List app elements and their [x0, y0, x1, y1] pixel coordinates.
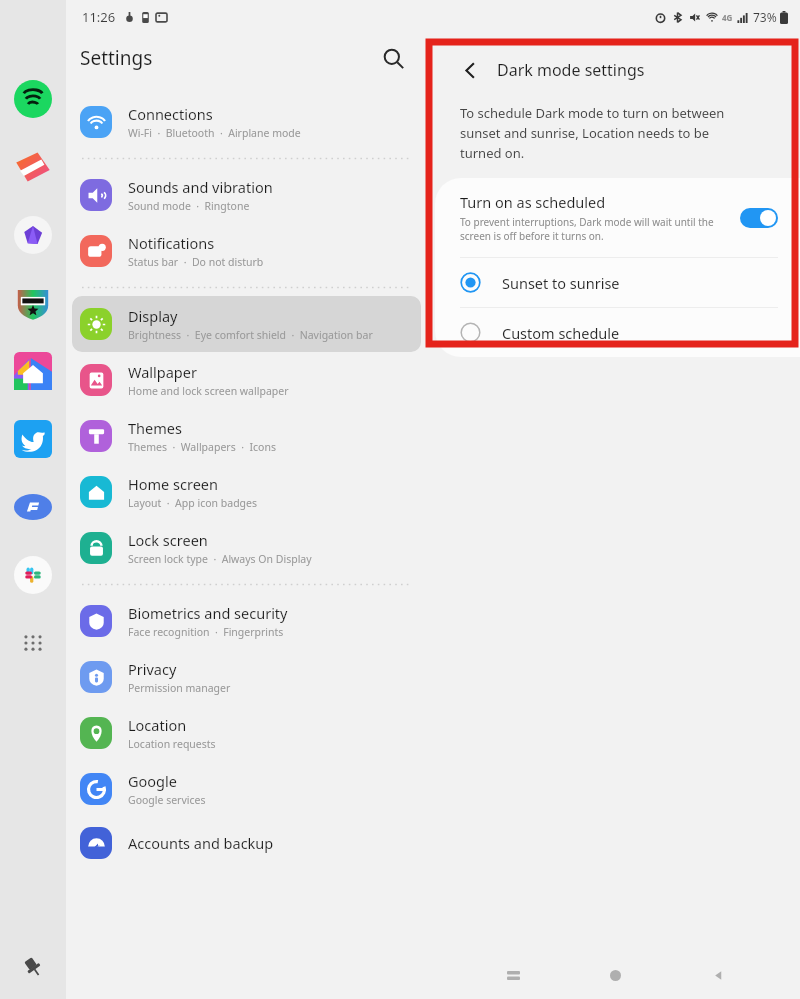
staticText: Sounds and vibration [128, 177, 273, 197]
staticText: Notifications [128, 233, 215, 253]
staticText: To prevent interruptions, Dark mode will… [460, 215, 726, 243]
button[interactable]: R app [12, 486, 54, 528]
staticText: Lock screen [128, 530, 208, 550]
staticText: Turn on as scheduled [460, 192, 606, 212]
staticText: Status bar · Do not disturb [128, 255, 264, 269]
staticText: Settings [80, 45, 153, 71]
button[interactable]: Notes [12, 146, 54, 188]
staticText: Home and lock screen wallpaper [128, 384, 289, 398]
staticText: Sound mode · Ringtone [128, 199, 250, 213]
button[interactable]: Turn on as scheduled toggle [740, 208, 778, 228]
button[interactable]: Turn on as scheduled [435, 178, 800, 257]
staticText: Layout · App icon badges [128, 496, 258, 510]
button[interactable]: Spotify [12, 78, 54, 120]
button[interactable]: Custom schedule [435, 308, 800, 357]
staticText: Screen lock type · Always On Display [128, 552, 312, 566]
staticText: Location requests [128, 737, 216, 751]
staticText: Google [128, 771, 177, 791]
staticText: 11:26 [82, 8, 116, 26]
staticText: Location [128, 715, 187, 735]
button[interactable]: Display [72, 296, 421, 352]
button[interactable]: Biometrics and security [72, 593, 421, 649]
button[interactable]: Slack [12, 554, 54, 596]
staticText: To schedule Dark mode to turn on between… [460, 104, 750, 162]
staticText: Display [128, 306, 178, 326]
button[interactable]: Home screen [72, 464, 421, 520]
button[interactable]: Back [698, 955, 738, 995]
button[interactable]: Search [373, 38, 413, 78]
staticText: Wi-Fi · Bluetooth · Airplane mode [128, 126, 301, 140]
button[interactable]: Pin taskbar [15, 949, 51, 985]
staticText: Brightness · Eye comfort shield · Naviga… [128, 328, 373, 342]
staticText: Accounts and backup [128, 833, 274, 853]
button[interactable]: Location [72, 705, 421, 761]
staticText: Permission manager [128, 681, 231, 695]
staticText: Dark mode settings [497, 59, 645, 81]
button[interactable]: Twitter [12, 418, 54, 460]
button[interactable]: Connections [72, 94, 421, 150]
button[interactable]: Accounts and backup [72, 817, 421, 869]
staticText: Home screen [128, 474, 218, 494]
button[interactable]: Back [453, 53, 487, 87]
button[interactable]: Wallpaper [72, 352, 421, 408]
staticText: Custom schedule [502, 323, 620, 343]
button[interactable]: Apps [16, 626, 50, 660]
button[interactable]: Sounds and vibration [72, 167, 421, 223]
button[interactable]: Google [72, 761, 421, 817]
staticText: Connections [128, 104, 213, 124]
staticText: Wallpaper [128, 362, 197, 382]
staticText: Google services [128, 793, 206, 807]
staticText: Sunset to sunrise [502, 273, 620, 293]
staticText: 73% [753, 9, 777, 25]
button[interactable]: Privacy [72, 649, 421, 705]
button[interactable]: Themes [72, 408, 421, 464]
button[interactable]: Notifications [72, 223, 421, 279]
button[interactable]: ESPN [12, 282, 54, 324]
button[interactable]: Sunset to sunrise [435, 258, 800, 307]
button[interactable]: Gem app [12, 214, 54, 256]
staticText: Themes · Wallpapers · Icons [128, 440, 276, 454]
button[interactable]: Photos [12, 350, 54, 392]
button[interactable]: Recents [493, 955, 533, 995]
button[interactable]: Lock screen [72, 520, 421, 576]
staticText: Privacy [128, 659, 177, 679]
staticText: 4G [722, 12, 733, 23]
button[interactable]: Home [595, 955, 635, 995]
staticText: Biometrics and security [128, 603, 288, 623]
staticText: Face recognition · Fingerprints [128, 625, 284, 639]
staticText: Themes [128, 418, 182, 438]
